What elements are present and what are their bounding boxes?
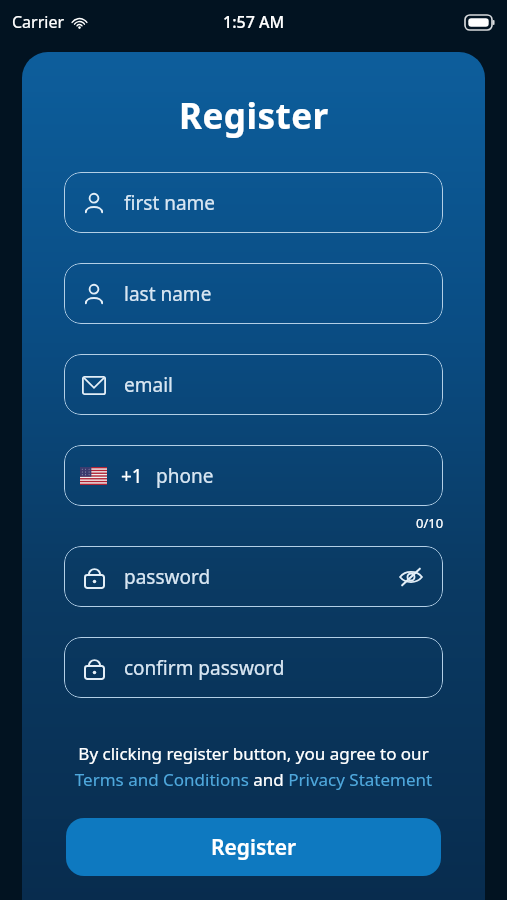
button[interactable]: +1 [64, 445, 443, 506]
staticText: last name [124, 281, 212, 307]
button[interactable]: By clicking register button, you agree t… [60, 742, 447, 791]
button[interactable]: email [64, 354, 443, 415]
staticText: Register [179, 92, 329, 140]
staticText: By clicking register button, you agree t… [60, 742, 447, 791]
button[interactable]: first name [64, 172, 443, 233]
staticText: first name [124, 190, 216, 216]
staticText: email [124, 372, 173, 398]
button[interactable]: Register [66, 818, 441, 876]
staticText: Carrier [12, 11, 65, 33]
staticText: +1 [121, 463, 143, 489]
staticText: Register [211, 833, 297, 862]
staticText: confirm password [124, 655, 285, 681]
staticText: 1:57 AM [223, 11, 285, 33]
staticText: password [124, 564, 211, 590]
button[interactable]: password [64, 546, 443, 607]
button[interactable]: last name [64, 263, 443, 324]
button[interactable]: confirm password [64, 637, 443, 698]
staticText: 0/10 [416, 514, 444, 532]
staticText: phone [156, 463, 214, 489]
button[interactable]: Show password [397, 563, 425, 591]
